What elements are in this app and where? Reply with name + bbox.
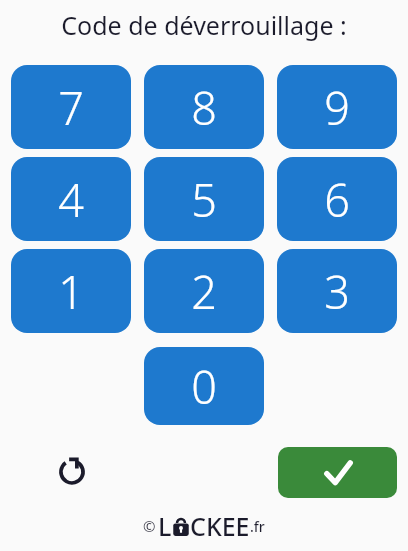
staticText: L bbox=[158, 509, 172, 543]
button[interactable]: 2 bbox=[144, 249, 264, 333]
staticText: 3 bbox=[324, 261, 350, 322]
button[interactable]: 1 bbox=[11, 249, 131, 333]
button[interactable]: 4 bbox=[11, 157, 131, 241]
staticText: 0 bbox=[191, 356, 217, 417]
staticText: 7 bbox=[58, 77, 84, 138]
staticText: 9 bbox=[324, 77, 350, 138]
staticText: Code de déverrouillage : bbox=[61, 8, 347, 42]
staticText: .fr bbox=[250, 517, 265, 536]
button[interactable]: 7 bbox=[11, 65, 131, 149]
button[interactable]: Valider bbox=[278, 447, 397, 498]
staticText: © bbox=[143, 516, 156, 536]
button[interactable]: Réinitialiser bbox=[46, 444, 98, 496]
button[interactable]: 5 bbox=[144, 157, 264, 241]
staticText: 6 bbox=[324, 169, 350, 230]
button[interactable]: 0 bbox=[144, 347, 264, 425]
staticText: CKEE bbox=[190, 509, 250, 543]
button[interactable]: 3 bbox=[277, 249, 397, 333]
button[interactable]: 8 bbox=[144, 65, 264, 149]
staticText: 8 bbox=[191, 77, 217, 138]
staticText: 1 bbox=[58, 261, 84, 322]
button[interactable]: 6 bbox=[277, 157, 397, 241]
staticText: 2 bbox=[191, 261, 217, 322]
button[interactable]: 9 bbox=[277, 65, 397, 149]
staticText: 5 bbox=[191, 169, 217, 230]
staticText: 4 bbox=[58, 169, 84, 230]
